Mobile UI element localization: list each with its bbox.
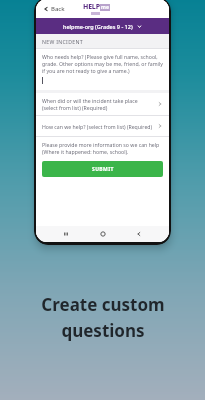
button[interactable]: Back bbox=[41, 2, 67, 16]
button[interactable]: Who needs help? (Please give full name, … bbox=[36, 49, 169, 90]
button[interactable]: How can we help? (select from list) (Req… bbox=[36, 116, 169, 136]
button[interactable]: helpme-org (Grades 9 - 12) bbox=[36, 18, 169, 34]
staticText: questions bbox=[61, 319, 145, 342]
staticText: me bbox=[101, 4, 109, 11]
staticText: HELP bbox=[83, 2, 100, 12]
button[interactable]: When did or will the incident take place… bbox=[36, 93, 169, 115]
staticText: NEW INCIDENT bbox=[42, 38, 83, 45]
staticText: How can we help? (select from list) (Req… bbox=[42, 123, 154, 130]
button[interactable]: Back bbox=[132, 227, 146, 241]
staticText: SUBMIT bbox=[92, 166, 114, 173]
staticText: Back bbox=[51, 5, 65, 13]
button[interactable]: SUBMIT bbox=[42, 161, 163, 177]
staticText: Please provide more information so we ca… bbox=[42, 141, 163, 155]
staticText: helpme-org (Grades 9 - 12) bbox=[63, 23, 133, 30]
staticText: Who needs help? (Please give full name, … bbox=[42, 53, 163, 74]
staticText: When did or will the incident take place… bbox=[42, 97, 154, 111]
staticText: Create custom bbox=[41, 293, 165, 316]
button[interactable]: Recent apps bbox=[59, 227, 73, 241]
button[interactable]: Home bbox=[96, 227, 110, 241]
button[interactable]: Please provide more information so we ca… bbox=[36, 137, 169, 159]
